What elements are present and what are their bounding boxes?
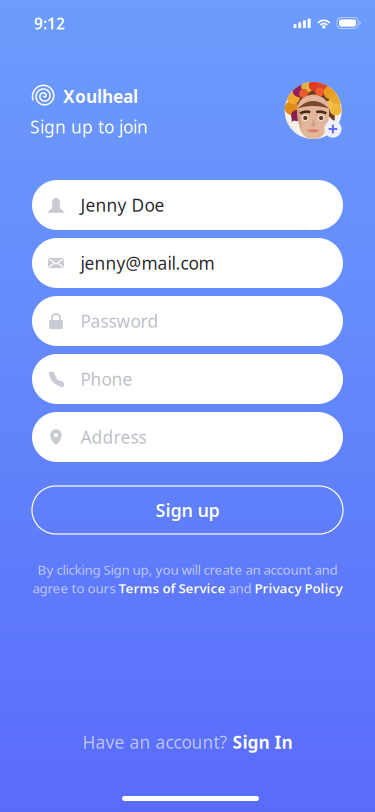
staticText: agree to ours [32, 579, 118, 597]
staticText: Jenny Doe [80, 193, 164, 217]
staticText: Xoulheal [63, 84, 138, 108]
staticText: Have an account? [82, 730, 232, 754]
button[interactable]: Phone [32, 354, 343, 404]
button[interactable]: Password [32, 296, 343, 346]
staticText: Privacy Policy [254, 579, 342, 597]
staticText: Phone [80, 367, 132, 391]
staticText: Password [80, 309, 158, 333]
staticText: Sign up [155, 498, 219, 522]
button[interactable]: Address [32, 412, 343, 462]
button[interactable]: Add profile photo [285, 82, 342, 139]
button[interactable]: Jenny Doe [32, 180, 343, 230]
staticText: Sign up to join [30, 115, 148, 139]
staticText: Sign In [232, 730, 292, 754]
staticText: By clicking Sign up, you will create an … [37, 560, 337, 579]
staticText: Address [80, 425, 146, 449]
staticText: Terms of Service [118, 579, 225, 597]
button[interactable]: Have an account? [77, 727, 298, 757]
staticText: and [225, 579, 254, 597]
button[interactable]: Sign up [32, 486, 343, 534]
staticText: jenny@mail.com [80, 251, 214, 275]
staticText: 9:12 [34, 13, 65, 34]
button[interactable]: jenny@mail.com [32, 238, 343, 288]
